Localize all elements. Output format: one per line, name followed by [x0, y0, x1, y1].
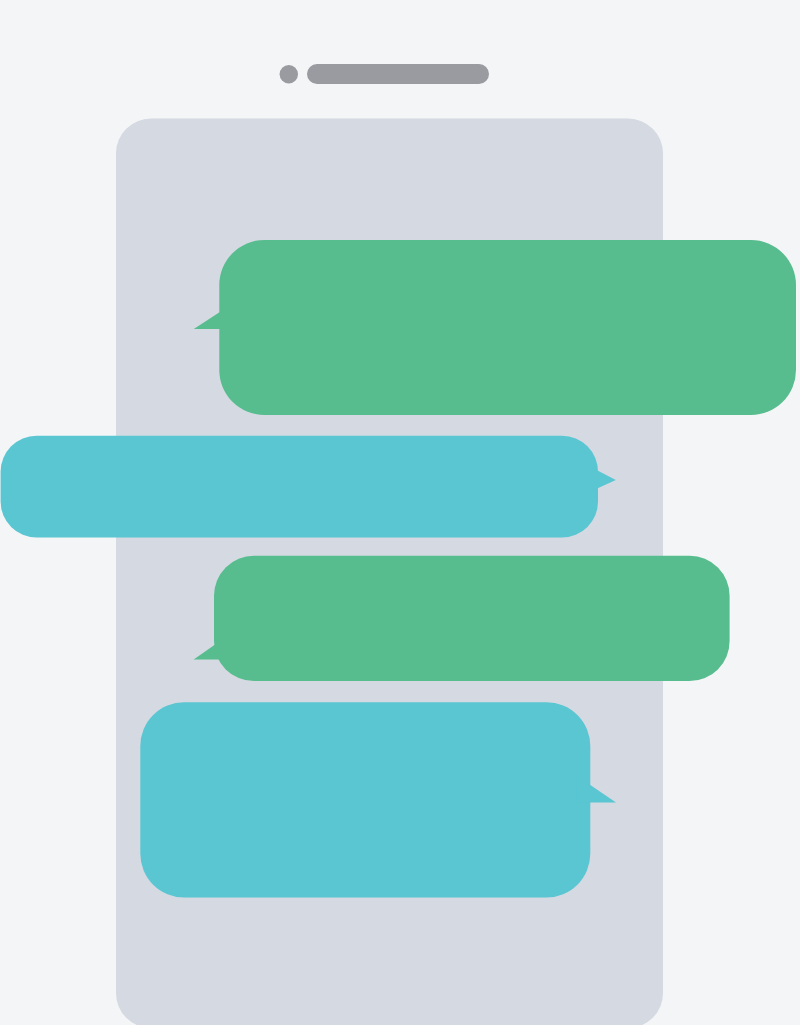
- button[interactable]: Received message 2: [194, 556, 730, 681]
- button[interactable]: Received message 1: [194, 240, 796, 415]
- button[interactable]: Sent message 1: [1, 436, 616, 538]
- button[interactable]: Sent message 2: [140, 702, 616, 897]
- button[interactable]: Open chat conversation: [116, 118, 663, 1025]
